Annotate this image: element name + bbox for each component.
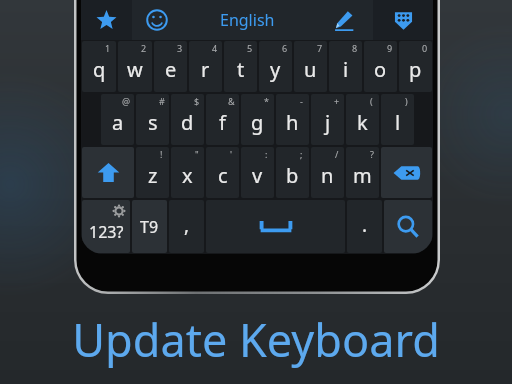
button[interactable]: Search bbox=[384, 200, 432, 253]
staticText: 4 bbox=[212, 42, 218, 54]
button[interactable]: 8 bbox=[329, 41, 362, 92]
staticText: 1 bbox=[105, 42, 111, 54]
staticText: p bbox=[409, 56, 422, 83]
staticText: English bbox=[220, 9, 275, 31]
staticText: 0 bbox=[422, 42, 428, 54]
staticText: . bbox=[362, 212, 368, 238]
button[interactable]: 4 bbox=[189, 41, 222, 92]
staticText: 6 bbox=[282, 42, 288, 54]
button[interactable]: . bbox=[347, 200, 382, 253]
staticText: ) bbox=[405, 95, 408, 107]
staticText: o bbox=[374, 56, 387, 83]
staticText: 3 bbox=[177, 42, 183, 54]
staticText: # bbox=[159, 95, 165, 107]
button[interactable]: ! bbox=[136, 147, 169, 198]
staticText: & bbox=[228, 95, 235, 107]
staticText: u bbox=[304, 56, 317, 83]
button[interactable]: Backspace bbox=[381, 147, 432, 198]
staticText: + bbox=[334, 95, 340, 107]
staticText: e bbox=[165, 56, 177, 83]
button[interactable]: Space bbox=[206, 200, 345, 253]
button[interactable]: 123? bbox=[82, 200, 130, 253]
staticText: a bbox=[112, 109, 124, 136]
staticText: 2 bbox=[141, 42, 147, 54]
staticText: x bbox=[182, 162, 193, 189]
staticText: h bbox=[286, 109, 299, 136]
button[interactable]: 3 bbox=[154, 41, 187, 92]
staticText: v bbox=[252, 162, 263, 189]
button[interactable]: @ bbox=[101, 94, 134, 145]
staticText: k bbox=[357, 109, 368, 136]
staticText: g bbox=[251, 109, 264, 136]
button[interactable]: ; bbox=[276, 147, 309, 198]
staticText: i bbox=[343, 56, 349, 83]
staticText: 8 bbox=[352, 42, 358, 54]
staticText: ; bbox=[300, 148, 303, 160]
button[interactable]: + bbox=[311, 94, 344, 145]
staticText: ! bbox=[160, 148, 163, 160]
staticText: Update Keyboard bbox=[72, 309, 440, 370]
staticText: c bbox=[218, 162, 228, 189]
staticText: q bbox=[93, 56, 106, 83]
button[interactable]: 2 bbox=[118, 41, 152, 92]
staticText: " bbox=[195, 148, 199, 160]
button[interactable]: 6 bbox=[259, 41, 292, 92]
button[interactable]: T9 bbox=[132, 200, 167, 253]
staticText: * bbox=[264, 95, 269, 107]
staticText: - bbox=[300, 95, 303, 107]
button[interactable]: # bbox=[136, 94, 169, 145]
button[interactable]: ? bbox=[346, 147, 379, 198]
staticText: 9 bbox=[387, 42, 393, 54]
staticText: 123? bbox=[89, 221, 124, 243]
staticText: r bbox=[201, 56, 210, 83]
staticText: @ bbox=[122, 95, 131, 107]
button[interactable]: ( bbox=[346, 94, 379, 145]
button[interactable]: Emoji bbox=[132, 0, 182, 40]
button[interactable]: Keypad bbox=[373, 0, 433, 40]
button[interactable]: * bbox=[241, 94, 274, 145]
staticText: y bbox=[270, 56, 281, 83]
button[interactable]: $ bbox=[171, 94, 204, 145]
staticText: w bbox=[127, 56, 143, 83]
staticText: d bbox=[181, 109, 194, 136]
staticText: ' bbox=[230, 148, 233, 160]
staticText: j bbox=[325, 109, 331, 136]
staticText: 7 bbox=[317, 42, 323, 54]
staticText: 5 bbox=[247, 42, 253, 54]
button[interactable]: / bbox=[311, 147, 344, 198]
button[interactable]: 7 bbox=[294, 41, 327, 92]
button[interactable]: 9 bbox=[364, 41, 397, 92]
staticText: ( bbox=[370, 95, 373, 107]
button[interactable]: " bbox=[171, 147, 204, 198]
staticText: : bbox=[265, 148, 268, 160]
staticText: b bbox=[286, 162, 299, 189]
staticText: T9 bbox=[140, 216, 159, 238]
button[interactable]: 1 bbox=[82, 41, 116, 92]
button[interactable]: 0 bbox=[399, 41, 432, 92]
button[interactable]: ) bbox=[381, 94, 414, 145]
button[interactable]: , bbox=[169, 200, 204, 253]
button[interactable]: Shift bbox=[82, 147, 134, 198]
staticText: s bbox=[148, 109, 158, 136]
button[interactable]: ' bbox=[206, 147, 239, 198]
staticText: l bbox=[395, 109, 401, 136]
staticText: t bbox=[237, 56, 245, 83]
staticText: $ bbox=[194, 95, 200, 107]
button[interactable]: - bbox=[276, 94, 309, 145]
button[interactable]: English bbox=[182, 0, 313, 40]
staticText: z bbox=[148, 162, 158, 189]
staticText: ? bbox=[370, 148, 374, 160]
staticText: / bbox=[335, 148, 339, 160]
staticText: n bbox=[321, 162, 334, 189]
staticText: f bbox=[219, 109, 226, 136]
button[interactable]: : bbox=[241, 147, 274, 198]
button[interactable]: 5 bbox=[224, 41, 257, 92]
button[interactable]: & bbox=[206, 94, 239, 145]
button[interactable]: Handwriting bbox=[313, 0, 373, 40]
button[interactable]: Favorites bbox=[81, 0, 132, 40]
staticText: , bbox=[184, 212, 190, 238]
staticText: m bbox=[353, 162, 372, 189]
